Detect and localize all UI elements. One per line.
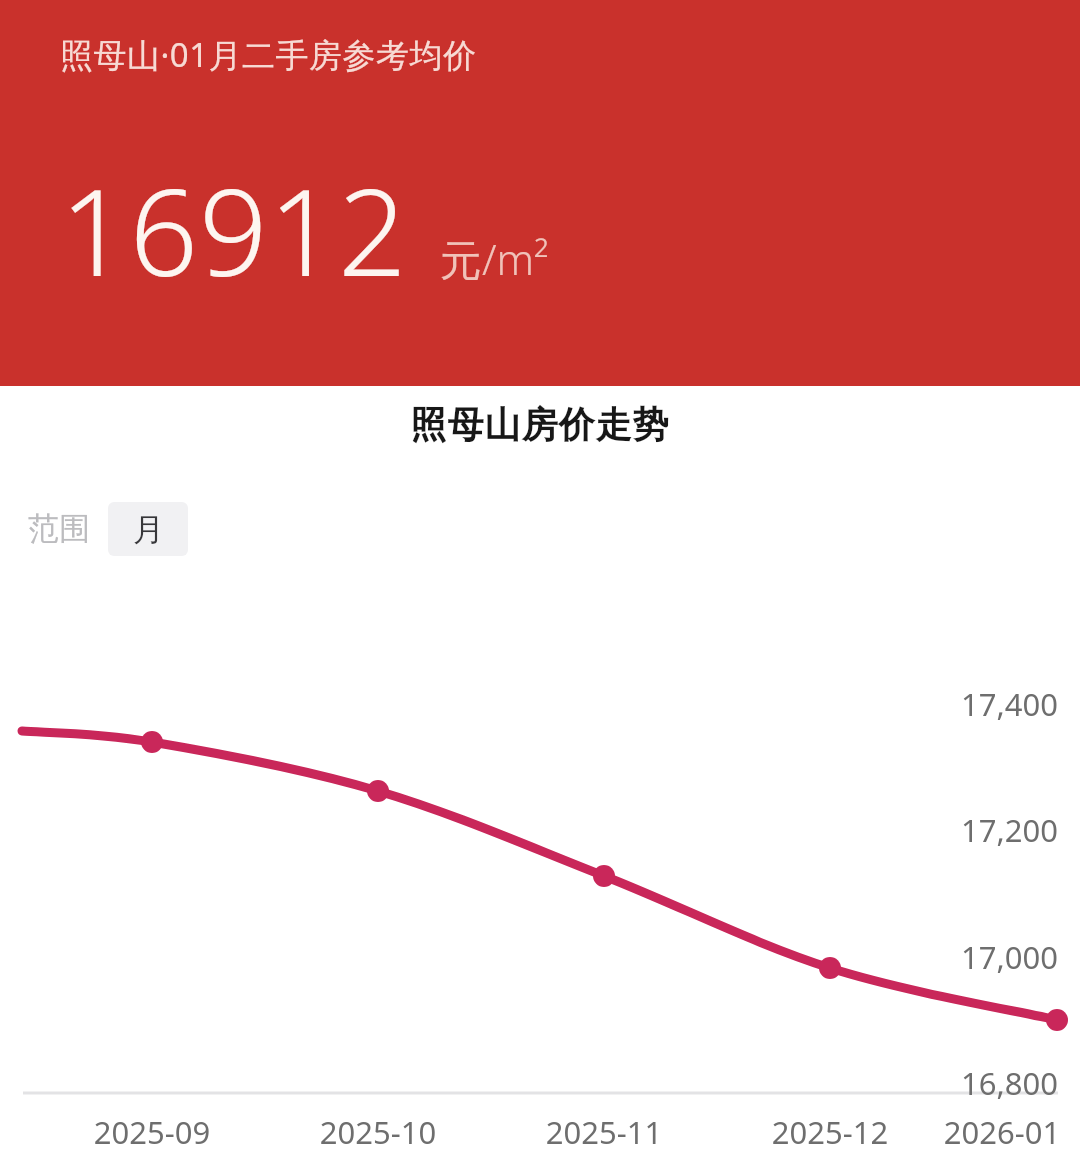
staticText: 2025-09 bbox=[72, 1111, 232, 1153]
staticText: 16912 bbox=[60, 148, 408, 311]
staticText: 照母山·01月二手房参考均价 bbox=[60, 32, 477, 77]
staticText: 16,800 bbox=[0, 1062, 1058, 1104]
staticText: 月 bbox=[133, 510, 164, 549]
staticText: 范围 bbox=[28, 509, 90, 548]
staticText: 17,200 bbox=[0, 809, 1058, 851]
button[interactable]: 月 bbox=[108, 502, 188, 556]
staticText: 照母山房价走势 bbox=[0, 402, 1080, 447]
staticText: 2025-12 bbox=[750, 1111, 910, 1153]
staticText: 2025-10 bbox=[298, 1111, 458, 1153]
staticText: 17,000 bbox=[0, 936, 1058, 978]
other: 照母山房价走势折线图 bbox=[0, 0, 1080, 1163]
staticText: 17,400 bbox=[0, 683, 1058, 725]
staticText: 2025-11 bbox=[524, 1111, 684, 1153]
staticText: 元/m² bbox=[440, 230, 549, 287]
button[interactable]: 范围 bbox=[24, 497, 94, 560]
staticText: 2026-01 bbox=[922, 1111, 1080, 1153]
